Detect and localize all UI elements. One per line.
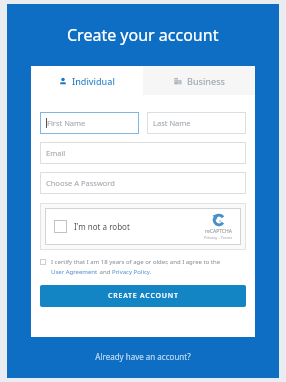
staticText: Business: [187, 75, 225, 87]
staticText: First Name: [47, 118, 86, 128]
button[interactable]: Choose A Password: [40, 172, 246, 194]
button[interactable]: First Name: [40, 112, 139, 134]
button[interactable]: Individual: [31, 66, 143, 95]
staticText: I'm not a robot: [74, 221, 130, 232]
other: I'm not a robot checkbox: [54, 220, 67, 233]
staticText: Privacy - Terms: [204, 235, 233, 240]
button[interactable]: I'm not a robot checkbox: [45, 208, 241, 245]
button[interactable]: Last Name: [147, 112, 246, 134]
staticText: and: [98, 268, 112, 276]
button[interactable]: User Agreement: [51, 268, 98, 276]
staticText: Individual: [72, 75, 115, 87]
button[interactable]: Already have an account?: [95, 351, 191, 362]
button[interactable]: I certify that I am 18 years of age or o…: [40, 258, 246, 276]
staticText: I certify that I am 18 years of age or o…: [51, 258, 221, 266]
button[interactable]: Privacy Policy.: [112, 268, 152, 276]
staticText: Last Name: [153, 118, 191, 128]
staticText: Email: [46, 148, 66, 158]
staticText: Choose A Password: [46, 178, 115, 188]
button[interactable]: Email: [40, 142, 246, 164]
staticText: Create your account: [67, 24, 219, 46]
button[interactable]: CREATE ACCOUNT: [40, 285, 246, 307]
staticText: CREATE ACCOUNT: [108, 291, 179, 301]
staticText: reCAPTCHA: [205, 228, 232, 235]
button[interactable]: Business: [143, 66, 255, 95]
